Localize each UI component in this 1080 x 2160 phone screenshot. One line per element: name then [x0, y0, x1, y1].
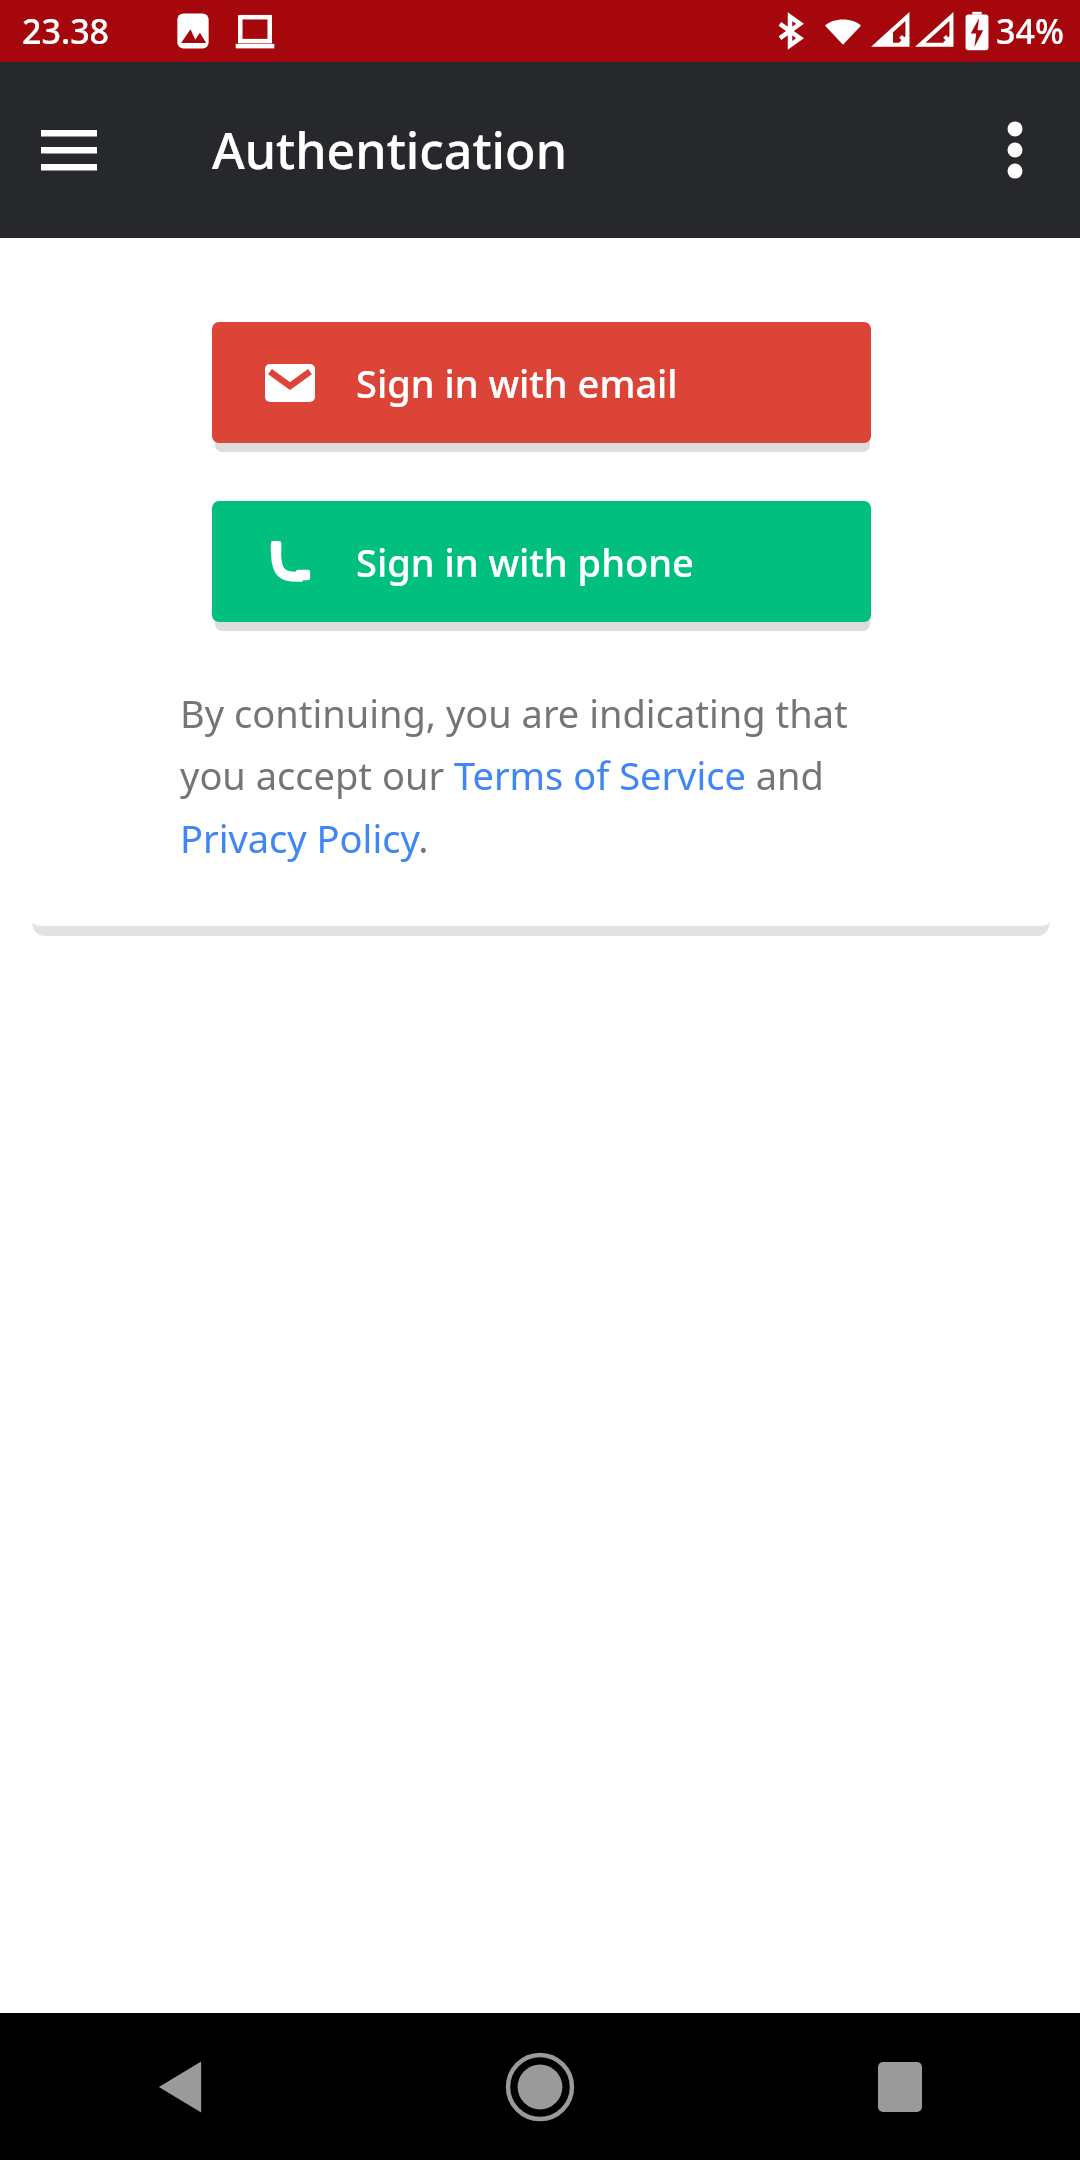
button[interactable]: Back: [0, 2013, 360, 2160]
staticText: Authentication: [212, 116, 567, 184]
button[interactable]: More options: [970, 105, 1060, 195]
staticText: 34%: [996, 8, 1064, 54]
staticText: Sign in with email: [356, 357, 678, 409]
button[interactable]: Sign in with email: [212, 322, 871, 443]
button[interactable]: Sign in with phone: [212, 501, 871, 622]
staticText: Sign in with phone: [356, 536, 694, 588]
button[interactable]: Recent apps: [720, 2013, 1080, 2160]
button[interactable]: Home: [360, 2013, 720, 2160]
staticText: By continuing, you are indicating that y…: [180, 687, 922, 865]
staticText: 23.38: [22, 8, 110, 54]
button[interactable]: Open navigation menu: [24, 105, 114, 195]
